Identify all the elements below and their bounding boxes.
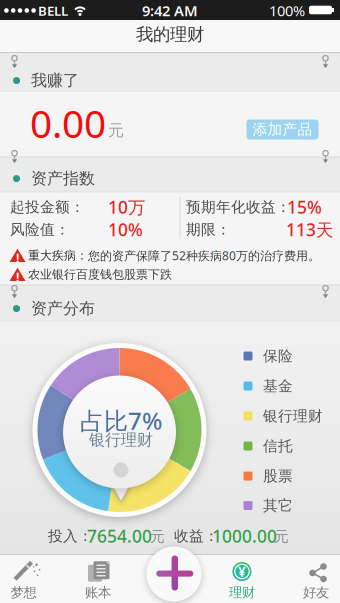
staticText: 元 <box>274 527 289 545</box>
button[interactable]: 账本 <box>68 555 128 603</box>
staticText: 期限： <box>186 220 231 238</box>
staticText: 保险 <box>263 347 293 365</box>
staticText: 资产分布 <box>31 299 95 318</box>
staticText: 10万 <box>108 195 145 218</box>
button[interactable]: 添加产品 <box>246 119 318 139</box>
staticText: 我赚了 <box>31 71 79 90</box>
button[interactable]: ¥ <box>212 555 272 603</box>
staticText: 投入： <box>48 527 93 545</box>
staticText: BELL <box>38 2 68 19</box>
staticText: ! <box>16 250 19 266</box>
button[interactable]: 好友 <box>286 555 340 603</box>
staticText: ¥ <box>238 563 246 580</box>
staticText: 资产指数 <box>31 169 95 188</box>
staticText: 9:42 AM <box>142 1 198 20</box>
staticText: 元 <box>108 121 124 140</box>
staticText: 起投金额： <box>10 198 85 216</box>
staticText: 0.00 <box>30 97 106 149</box>
staticText: 15% <box>287 195 322 218</box>
staticText: 7654.00 <box>87 524 152 547</box>
button[interactable] <box>145 545 203 603</box>
staticText: 我的理财 <box>136 24 204 45</box>
staticText: 元 <box>150 527 165 545</box>
staticText: 占比7% <box>80 405 162 436</box>
staticText: 银行理财 <box>89 430 153 450</box>
staticText: 股票 <box>263 467 293 485</box>
staticText: 理财 <box>229 584 255 601</box>
staticText: 1000.00 <box>212 524 277 547</box>
staticText: 重大疾病： <box>28 248 88 263</box>
staticText: 梦想 <box>10 584 36 601</box>
staticText: 银行理财 <box>263 407 323 425</box>
staticText: 您的资产保障了52种疾病80万的治疗费用。 <box>88 247 320 263</box>
staticText: 收益： <box>174 527 219 545</box>
staticText: 预期年化收益： <box>186 198 291 216</box>
staticText: 100% <box>269 1 305 20</box>
staticText: 农业银行百度钱包股票下跌 <box>28 267 172 282</box>
staticText: 10% <box>108 218 143 241</box>
staticText: ! <box>16 269 19 285</box>
staticText: 信托 <box>263 437 293 455</box>
staticText: 其它 <box>263 496 293 514</box>
staticText: 113天 <box>286 218 333 241</box>
staticText: 添加产品 <box>252 120 312 138</box>
staticText: 账本 <box>85 584 111 601</box>
staticText: 基金 <box>263 377 293 395</box>
button[interactable]: 梦想 <box>0 555 53 603</box>
staticText: 风险值： <box>10 220 70 238</box>
staticText: 好友 <box>303 584 329 601</box>
